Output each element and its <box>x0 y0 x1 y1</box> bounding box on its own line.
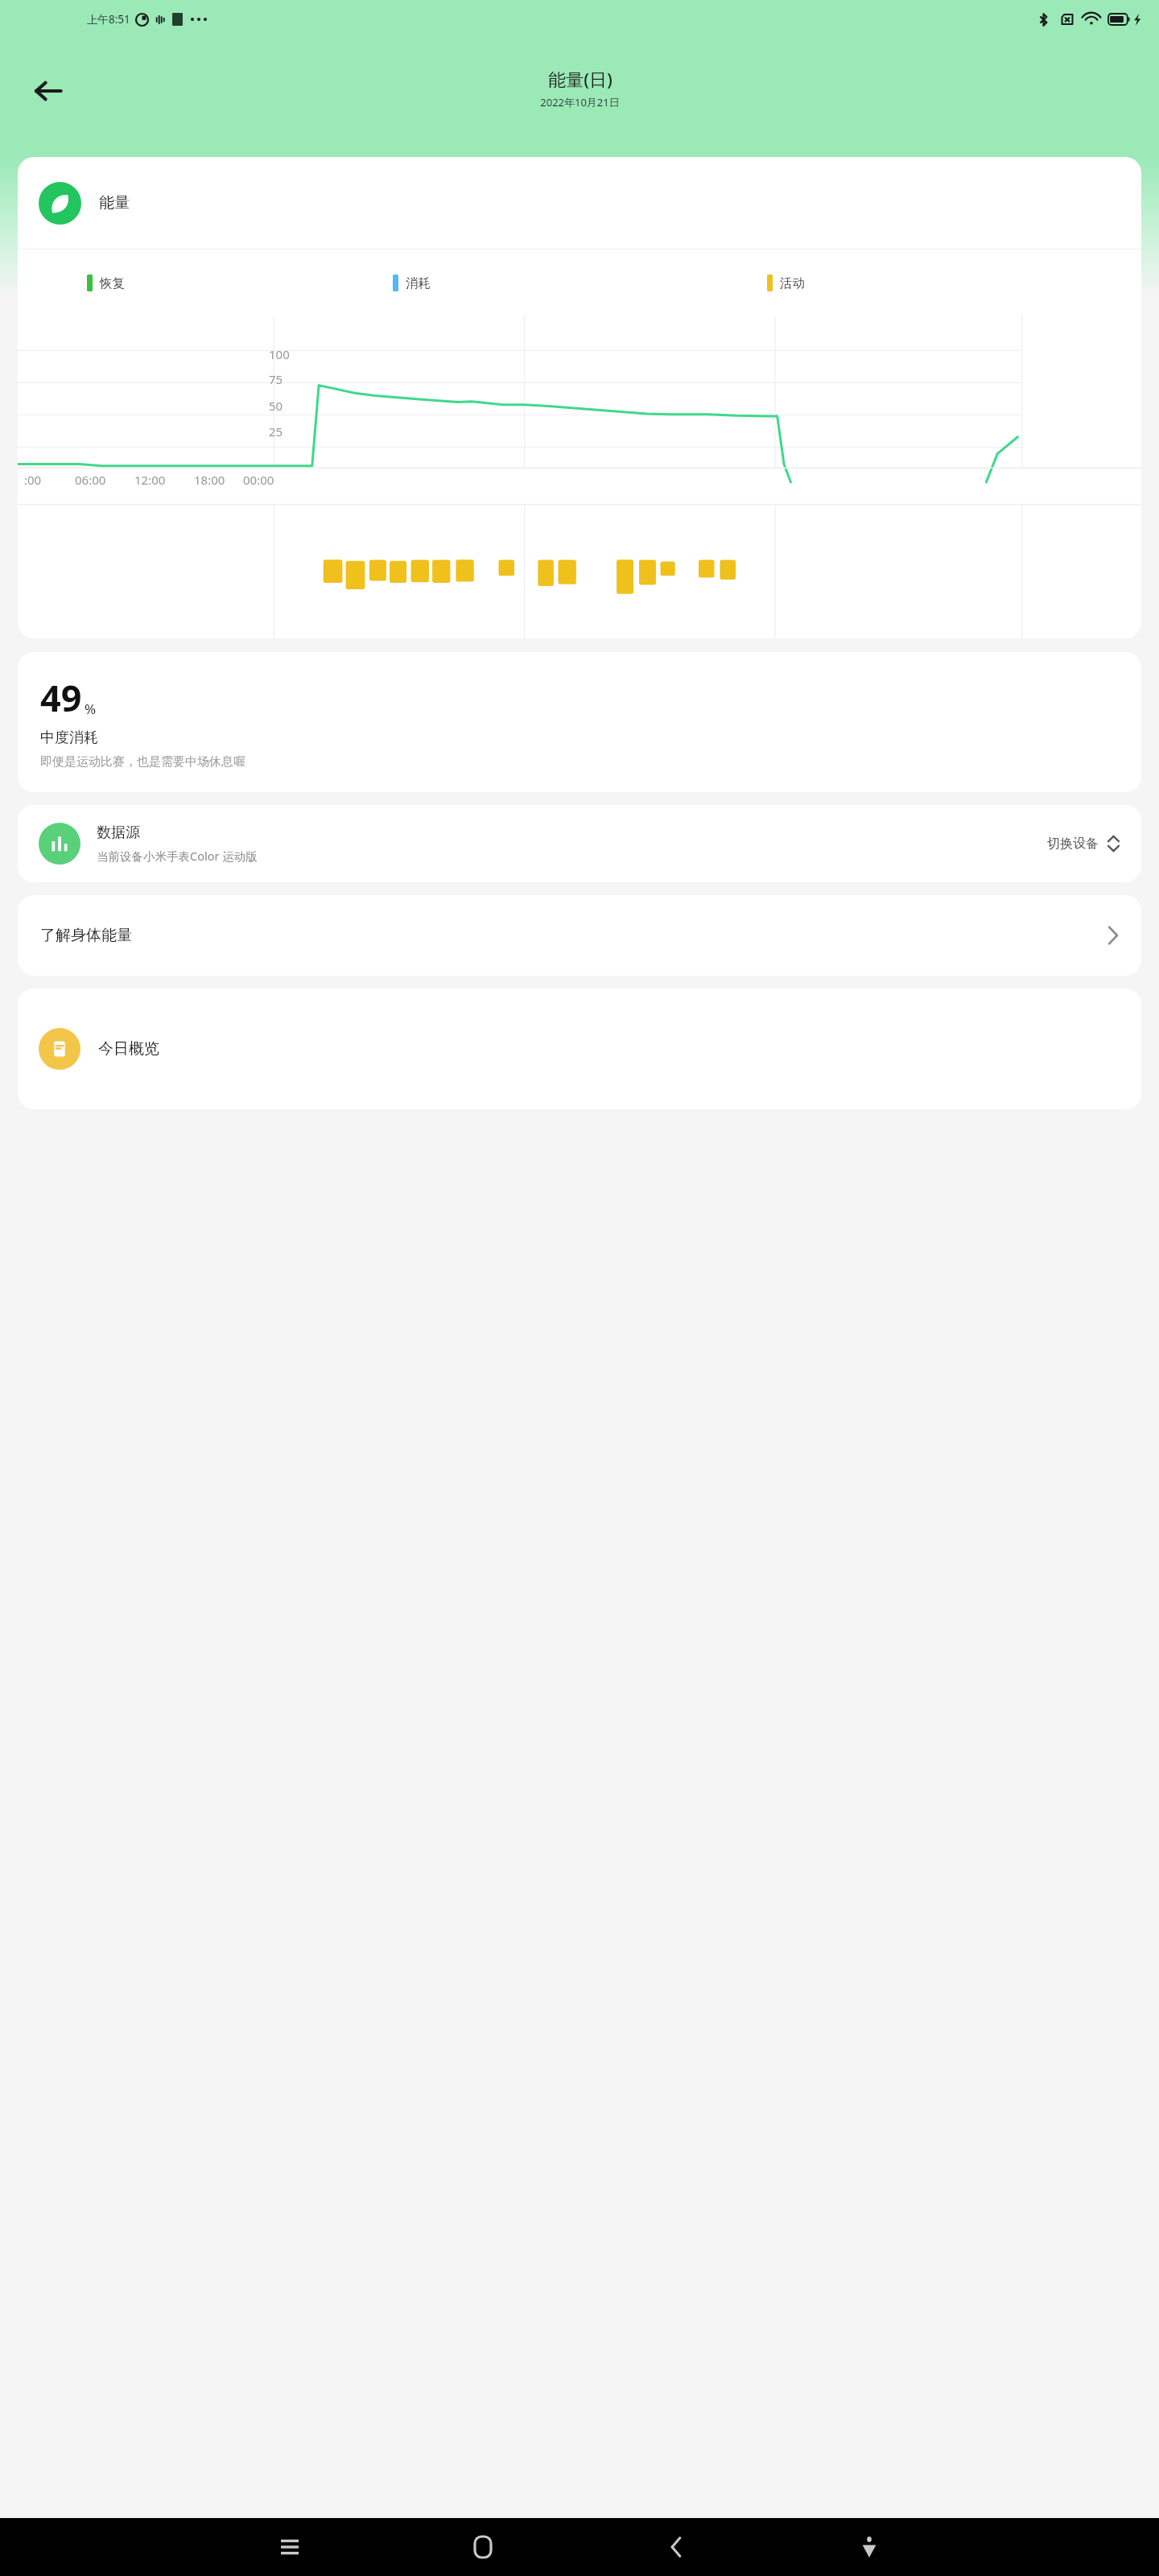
button[interactable]: 今日概览 <box>18 989 1141 1109</box>
staticText: 50 <box>269 398 283 414</box>
staticText: 活动 <box>780 275 805 291</box>
staticText: 今日概览 <box>98 1039 159 1059</box>
staticText: 49 <box>40 673 82 722</box>
button[interactable]: Download <box>773 2518 966 2576</box>
staticText: 当前设备小米手表Color 运动版 <box>97 848 258 864</box>
button[interactable]: Back <box>579 2518 773 2576</box>
staticText: 18:00 <box>194 472 225 488</box>
staticText: 12:00 <box>134 472 166 488</box>
button[interactable]: Back <box>23 65 74 117</box>
staticText: 切换设备 <box>1047 836 1099 852</box>
staticText: 25 <box>269 423 283 440</box>
staticText: 中度消耗 <box>40 729 98 747</box>
staticText: % <box>85 700 97 718</box>
button[interactable]: 数据源 <box>18 805 1141 882</box>
staticText: 能量 <box>99 193 130 213</box>
staticText: 恢复 <box>100 275 125 291</box>
staticText: :00 <box>24 472 42 488</box>
staticText: 06:00 <box>75 472 106 488</box>
staticText: 能量(日) <box>548 67 612 91</box>
staticText: 即便是运动比赛，也是需要中场休息喔 <box>40 754 245 770</box>
staticText: 了解身体能量 <box>40 926 1107 945</box>
staticText: 数据源 <box>97 824 140 842</box>
staticText: 00:00 <box>243 472 274 488</box>
staticText: 75 <box>269 371 283 387</box>
button[interactable]: 了解身体能量 <box>18 895 1141 976</box>
staticText: 100 <box>269 346 290 362</box>
staticText: 2022年10月21日 <box>540 95 620 109</box>
button[interactable]: Home <box>386 2518 579 2576</box>
staticText: 消耗 <box>406 275 431 291</box>
staticText: 上午8:51 <box>87 12 130 27</box>
button[interactable]: Menu <box>193 2518 386 2576</box>
